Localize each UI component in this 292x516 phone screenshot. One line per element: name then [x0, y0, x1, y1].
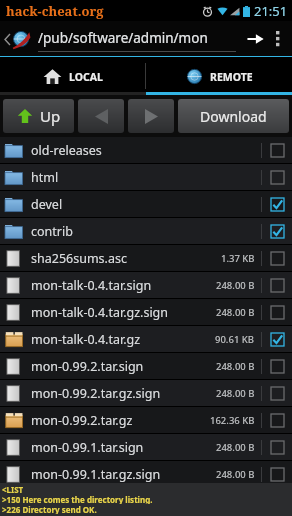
- button[interactable]: sha256sums.asc: [0, 245, 292, 271]
- button[interactable]: LOCAL: [0, 57, 145, 95]
- button[interactable]: html: [0, 164, 292, 190]
- staticText: Up: [40, 106, 61, 126]
- button[interactable]: REMOTE: [146, 57, 292, 95]
- staticText: 248.00 B: [216, 306, 255, 319]
- button[interactable]: Select mon-talk-0.4.tar.gz.sign: [267, 302, 287, 322]
- button[interactable]: Select contrib: [267, 221, 287, 241]
- staticText: 1.37 KB: [221, 252, 255, 265]
- button[interactable]: mon-talk-0.4.tar.sign: [0, 272, 292, 298]
- staticText: mon-0.99.1.tar.gz.sign: [31, 466, 216, 483]
- staticText: >150 Here comes the directory listing.: [2, 494, 153, 504]
- button[interactable]: Back: [4, 21, 30, 57]
- button[interactable]: Select old-releases: [267, 140, 287, 160]
- staticText: old-releases: [31, 142, 255, 159]
- staticText: 248.00 B: [216, 279, 255, 292]
- staticText: 162.36 KB: [210, 414, 255, 427]
- staticText: mon-0.99.2.tar.gz.sign: [31, 385, 216, 402]
- staticText: mon-0.99.2.tar.gz: [31, 412, 210, 429]
- button[interactable]: Forward: [128, 99, 174, 133]
- button[interactable]: Select mon-0.99.2.tar.gz: [267, 410, 287, 430]
- button[interactable]: /pub/software/admin/mon: [38, 21, 236, 57]
- staticText: 248.00 B: [216, 441, 255, 454]
- staticText: LOCAL: [69, 70, 103, 84]
- button[interactable]: More options: [268, 21, 288, 57]
- staticText: sha256sums.asc: [31, 250, 221, 267]
- staticText: 248.00 B: [216, 468, 255, 481]
- button[interactable]: mon-0.99.1.tar.sign: [0, 434, 292, 460]
- staticText: devel: [31, 196, 255, 213]
- staticText: /pub/software/admin/mon: [38, 29, 208, 47]
- button[interactable]: mon-talk-0.4.tar.gz.sign: [0, 299, 292, 325]
- button[interactable]: Select mon-talk-0.4.tar.gz: [267, 329, 287, 349]
- button[interactable]: Select mon-0.99.2.tar.sign: [267, 356, 287, 376]
- button[interactable]: mon-talk-0.4.tar.gz: [0, 326, 292, 352]
- button[interactable]: mon-0.99.1.tar.gz.sign: [0, 461, 292, 487]
- staticText: mon-talk-0.4.tar.gz: [31, 331, 215, 348]
- button[interactable]: Select mon-0.99.1.tar.gz.sign: [267, 464, 287, 484]
- button[interactable]: devel: [0, 191, 292, 217]
- staticText: 248.00 B: [216, 387, 255, 400]
- button[interactable]: Up: [3, 99, 74, 133]
- button[interactable]: Select devel: [267, 194, 287, 214]
- button[interactable]: mon-0.99.2.tar.gz: [0, 407, 292, 433]
- button[interactable]: Select mon-0.99.1.tar.sign: [267, 437, 287, 457]
- button[interactable]: Go: [242, 26, 268, 52]
- staticText: REMOTE: [210, 70, 253, 84]
- button[interactable]: mon-0.99.2.tar.gz.sign: [0, 380, 292, 406]
- button[interactable]: mon-0.99.2.tar.sign: [0, 353, 292, 379]
- staticText: mon-talk-0.4.tar.sign: [31, 277, 216, 294]
- staticText: >226 Directory send OK.: [2, 504, 97, 514]
- staticText: mon-0.99.1.tar.sign: [31, 439, 216, 456]
- button[interactable]: Select mon-0.99.2.tar.gz.sign: [267, 383, 287, 403]
- staticText: 248.00 B: [216, 360, 255, 373]
- staticText: <LIST: [2, 484, 24, 494]
- button[interactable]: Select sha256sums.asc: [267, 248, 287, 268]
- staticText: Download: [200, 107, 267, 126]
- button[interactable]: contrib: [0, 218, 292, 244]
- button[interactable]: Select mon-talk-0.4.tar.sign: [267, 275, 287, 295]
- staticText: mon-0.99.2.tar.sign: [31, 358, 216, 375]
- button[interactable]: Back: [78, 99, 124, 133]
- staticText: hack-cheat.org: [6, 2, 104, 20]
- staticText: 90.61 KB: [215, 333, 255, 346]
- button[interactable]: Select html: [267, 167, 287, 187]
- staticText: contrib: [31, 223, 255, 240]
- staticText: 21:51: [254, 2, 288, 20]
- button[interactable]: Download: [178, 99, 289, 133]
- staticText: html: [31, 169, 255, 186]
- staticText: mon-talk-0.4.tar.gz.sign: [31, 304, 216, 321]
- button[interactable]: old-releases: [0, 137, 292, 163]
